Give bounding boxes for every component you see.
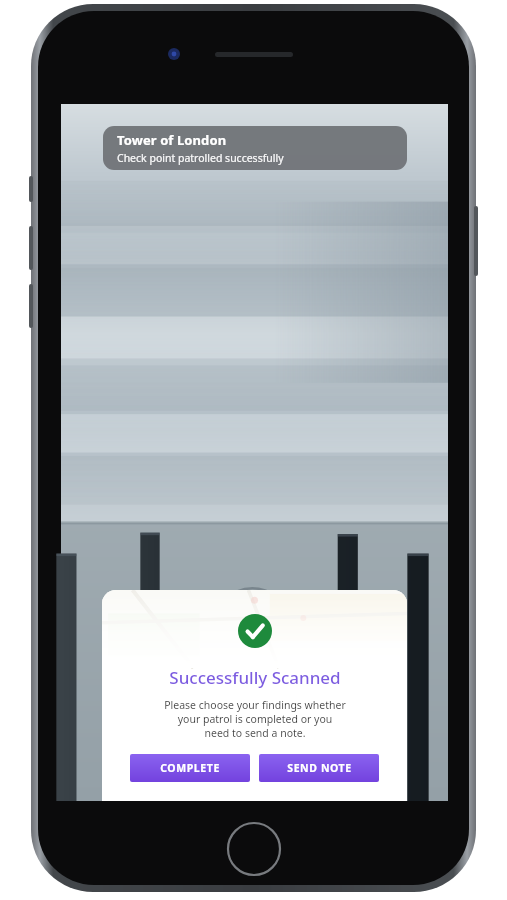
button[interactable]: SEND NOTE (259, 754, 379, 782)
button[interactable]: COMPLETE (130, 754, 250, 782)
button[interactable]: Tower of London (103, 126, 407, 170)
staticText: Tower of London (117, 131, 227, 149)
staticText: SEND NOTE (287, 761, 352, 775)
staticText: COMPLETE (160, 761, 220, 775)
staticText: Please choose your findings whether your… (164, 698, 346, 740)
staticText: Successfully Scanned (169, 666, 341, 689)
staticText: Check point patrolled successfully (117, 151, 284, 165)
